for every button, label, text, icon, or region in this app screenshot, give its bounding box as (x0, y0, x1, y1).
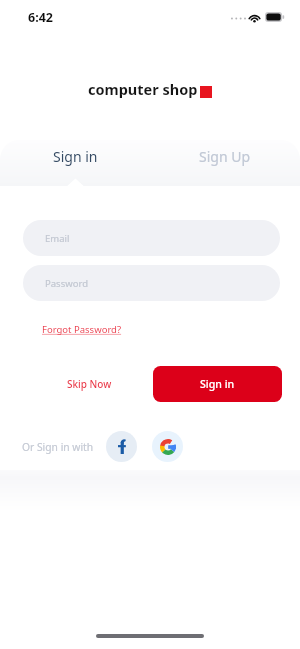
button[interactable]: Sign Up (150, 133, 300, 179)
staticText: Skip Now (67, 377, 112, 391)
staticText: Password (45, 277, 88, 290)
staticText: Email (45, 232, 70, 245)
staticText: Sign Up (199, 147, 251, 166)
staticText: Sign in (200, 377, 235, 391)
staticText: Or Sign in with (22, 440, 94, 454)
button[interactable]: Forgot Password? (42, 323, 122, 336)
button[interactable]: Sign in (153, 366, 282, 402)
button[interactable]: Email (23, 220, 280, 256)
staticText: computer shop (88, 79, 198, 99)
button[interactable]: Sign in (0, 133, 150, 179)
button[interactable]: Sign in with Facebook (106, 431, 137, 462)
button[interactable]: Skip Now (67, 377, 112, 391)
staticText: 6:42 (28, 9, 53, 26)
button[interactable]: Password (23, 265, 280, 301)
staticText: Sign in (53, 147, 98, 166)
button[interactable]: Sign in with Google (152, 431, 183, 462)
